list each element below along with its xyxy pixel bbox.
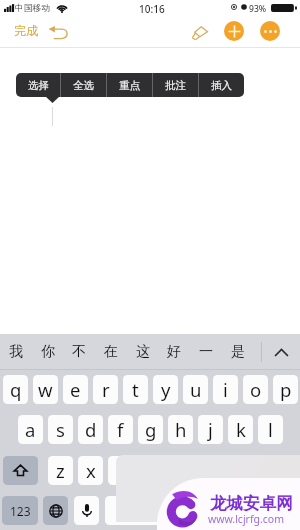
staticText: t xyxy=(132,377,139,402)
button[interactable]: 批注 xyxy=(153,73,198,97)
button[interactable]: h xyxy=(168,415,193,444)
button[interactable]: o xyxy=(243,375,268,404)
button[interactable]: 全选 xyxy=(61,73,106,97)
button[interactable]: Voice input xyxy=(74,496,99,525)
staticText: q xyxy=(10,377,22,402)
button[interactable]: d xyxy=(78,415,103,444)
staticText: 10:16 xyxy=(139,2,165,16)
button[interactable]: 选择 xyxy=(16,73,60,97)
staticText: s xyxy=(56,417,65,442)
button[interactable]: 在 xyxy=(95,334,127,370)
staticText: l xyxy=(268,417,273,442)
button[interactable]: l xyxy=(258,415,283,444)
staticText: r xyxy=(102,377,110,402)
button[interactable]: Shift xyxy=(3,456,38,485)
staticText: j xyxy=(208,417,213,442)
button[interactable]: r xyxy=(93,375,118,404)
staticText: 重点 xyxy=(119,79,140,92)
staticText: 好 xyxy=(167,343,181,361)
staticText: x xyxy=(86,458,96,483)
staticText: 93% xyxy=(249,3,267,15)
button[interactable]: Expand candidates xyxy=(262,334,300,370)
button[interactable]: 我 xyxy=(0,334,32,370)
button[interactable]: Add xyxy=(224,21,244,41)
button[interactable]: p xyxy=(273,375,298,404)
button[interactable]: c xyxy=(108,456,133,485)
button[interactable]: f xyxy=(108,415,133,444)
button[interactable]: m xyxy=(228,456,253,485)
button[interactable]: s xyxy=(48,415,73,444)
button[interactable]: z xyxy=(48,456,73,485)
button[interactable] xyxy=(105,496,245,525)
staticText: i xyxy=(223,377,228,402)
button[interactable]: Undo xyxy=(46,21,70,44)
button[interactable]: 你 xyxy=(32,334,64,370)
button[interactable]: y xyxy=(153,375,178,404)
staticText: 123 xyxy=(10,503,31,519)
staticText: 你 xyxy=(41,343,55,361)
staticText: 一 xyxy=(199,343,213,361)
button[interactable]: b xyxy=(168,456,193,485)
staticText: 插入 xyxy=(211,79,232,92)
button[interactable]: 一 xyxy=(190,334,222,370)
button[interactable]: j xyxy=(198,415,223,444)
button[interactable]: q xyxy=(3,375,28,404)
staticText: e xyxy=(70,377,81,402)
staticText: d xyxy=(85,417,97,442)
staticText: m xyxy=(232,458,250,483)
button[interactable]: g xyxy=(138,415,163,444)
button[interactable]: t xyxy=(123,375,148,404)
staticText: 批注 xyxy=(165,79,186,92)
button[interactable]: 换行 xyxy=(250,496,298,525)
staticText: 这 xyxy=(136,343,150,361)
button[interactable]: a xyxy=(18,415,43,444)
staticText: g xyxy=(145,417,157,442)
button[interactable]: 好 xyxy=(158,334,190,370)
button[interactable]: i xyxy=(213,375,238,404)
staticText: 龙城安卓网 xyxy=(210,493,293,514)
staticText: 选择 xyxy=(28,79,49,92)
button[interactable]: 完成 xyxy=(14,23,38,38)
staticText: 我 xyxy=(9,343,23,361)
staticText: n xyxy=(205,458,217,483)
button[interactable]: e xyxy=(63,375,88,404)
staticText: f xyxy=(117,417,124,442)
staticText: 全选 xyxy=(73,79,94,92)
button[interactable]: w xyxy=(33,375,58,404)
staticText: a xyxy=(25,417,36,442)
staticText: 是 xyxy=(231,343,245,361)
button[interactable]: 是 xyxy=(222,334,254,370)
button[interactable]: Draw xyxy=(188,23,210,43)
button[interactable]: u xyxy=(183,375,208,404)
staticText: 中国移动 xyxy=(15,3,51,14)
staticText: o xyxy=(250,377,262,402)
button[interactable]: 这 xyxy=(127,334,159,370)
staticText: h xyxy=(175,417,187,442)
button[interactable]: n xyxy=(198,456,223,485)
button[interactable]: 123 xyxy=(2,496,38,525)
staticText: w xyxy=(38,377,53,402)
staticText: 在 xyxy=(104,343,118,361)
staticText: k xyxy=(236,417,246,442)
staticText: 不 xyxy=(72,343,86,361)
button[interactable]: More options xyxy=(260,21,280,41)
staticText: 换行 xyxy=(263,504,285,518)
staticText: 完成 xyxy=(14,23,38,38)
staticText: y xyxy=(161,377,171,402)
button[interactable]: 不 xyxy=(63,334,95,370)
button[interactable]: x xyxy=(78,456,103,485)
button[interactable]: 重点 xyxy=(107,73,152,97)
staticText: p xyxy=(280,377,292,402)
staticText: www.lcjrfg.com xyxy=(208,512,285,526)
button[interactable]: 插入 xyxy=(199,73,244,97)
button[interactable]: Switch keyboard language xyxy=(43,496,68,525)
button[interactable]: k xyxy=(228,415,253,444)
staticText: z xyxy=(56,458,65,483)
staticText: u xyxy=(190,377,202,402)
button[interactable]: Backspace xyxy=(263,456,298,485)
